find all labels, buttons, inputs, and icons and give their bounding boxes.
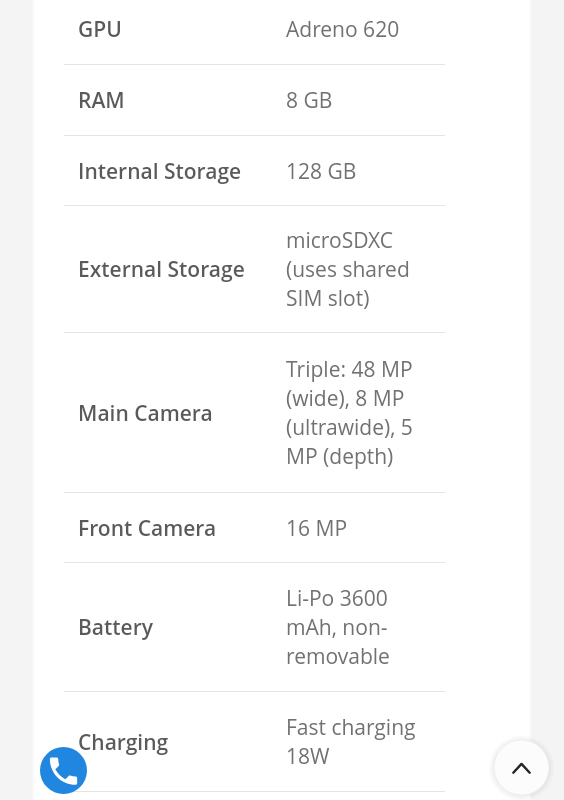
staticText: Battery (78, 613, 286, 642)
staticText: External Storage (78, 255, 286, 284)
staticText: Front Camera (78, 514, 286, 543)
staticText: SIM slot) (286, 284, 370, 313)
staticText: (ultrawide), 5 (286, 413, 413, 442)
staticText: 128 GB (286, 157, 357, 186)
staticText: microSDXC (286, 226, 394, 255)
staticText: Li-Po 3600 (286, 584, 388, 613)
staticText: 8 GB (286, 86, 333, 115)
staticText: Triple: 48 MP (286, 355, 413, 384)
staticText: Adreno 620 (286, 15, 400, 44)
staticText: mAh, non- (286, 613, 388, 642)
staticText: 16 MP (286, 514, 348, 543)
staticText: removable (286, 642, 390, 671)
staticText: Charging (78, 728, 286, 757)
staticText: Fast charging (286, 713, 416, 742)
staticText: (wide), 8 MP (286, 384, 405, 413)
staticText: 18W (286, 742, 330, 771)
staticText: RAM (78, 86, 286, 115)
staticText: Internal Storage (78, 157, 286, 186)
button[interactable]: Call (40, 747, 87, 794)
staticText: (uses shared (286, 255, 410, 284)
staticText: GPU (78, 15, 286, 44)
button[interactable]: Scroll to top (494, 740, 549, 795)
staticText: Main Camera (78, 399, 286, 428)
staticText: MP (depth) (286, 442, 394, 471)
